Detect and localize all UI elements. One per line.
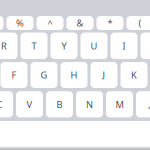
button[interactable]: T [20,32,47,59]
staticText: T [31,40,36,52]
button[interactable]: , [136,91,150,117]
button[interactable]: $ [0,16,3,30]
button[interactable]: N [76,91,103,117]
button[interactable]: K [120,62,147,88]
staticText: Y [61,40,66,52]
button[interactable]: H [60,62,87,88]
button[interactable]: B [46,91,73,117]
button[interactable]: O [140,32,150,59]
button[interactable]: M [106,91,133,117]
staticText: F [11,69,16,81]
button[interactable]: % [6,16,33,30]
button[interactable]: G [30,62,57,88]
staticText: & [76,17,83,29]
button[interactable]: Y [50,32,77,59]
staticText: * [107,17,112,29]
button[interactable]: V [16,91,43,117]
button[interactable]: F [0,62,27,88]
staticText: R [1,40,7,52]
staticText: U [90,40,97,52]
button[interactable]: U [80,32,107,59]
staticText: I [122,40,125,52]
button[interactable]: * [96,16,123,30]
staticText: M [115,98,123,110]
button[interactable]: ( [126,16,150,30]
staticText: B [56,98,62,110]
staticText: ^ [47,17,52,29]
staticText: K [131,69,137,81]
staticText: C [0,98,2,110]
staticText: N [86,98,93,110]
staticText: % [16,17,24,29]
button[interactable]: C [0,91,13,117]
staticText: H [70,69,77,81]
button[interactable]: R [0,32,17,59]
staticText: G [40,69,47,81]
button[interactable]: & [66,16,93,30]
staticText: ( [138,17,141,29]
button[interactable]: I [110,32,137,59]
button[interactable]: ^ [36,16,63,30]
staticText: , [148,98,150,110]
button[interactable]: J [90,62,117,88]
staticText: V [26,98,32,110]
staticText: J [102,69,105,81]
